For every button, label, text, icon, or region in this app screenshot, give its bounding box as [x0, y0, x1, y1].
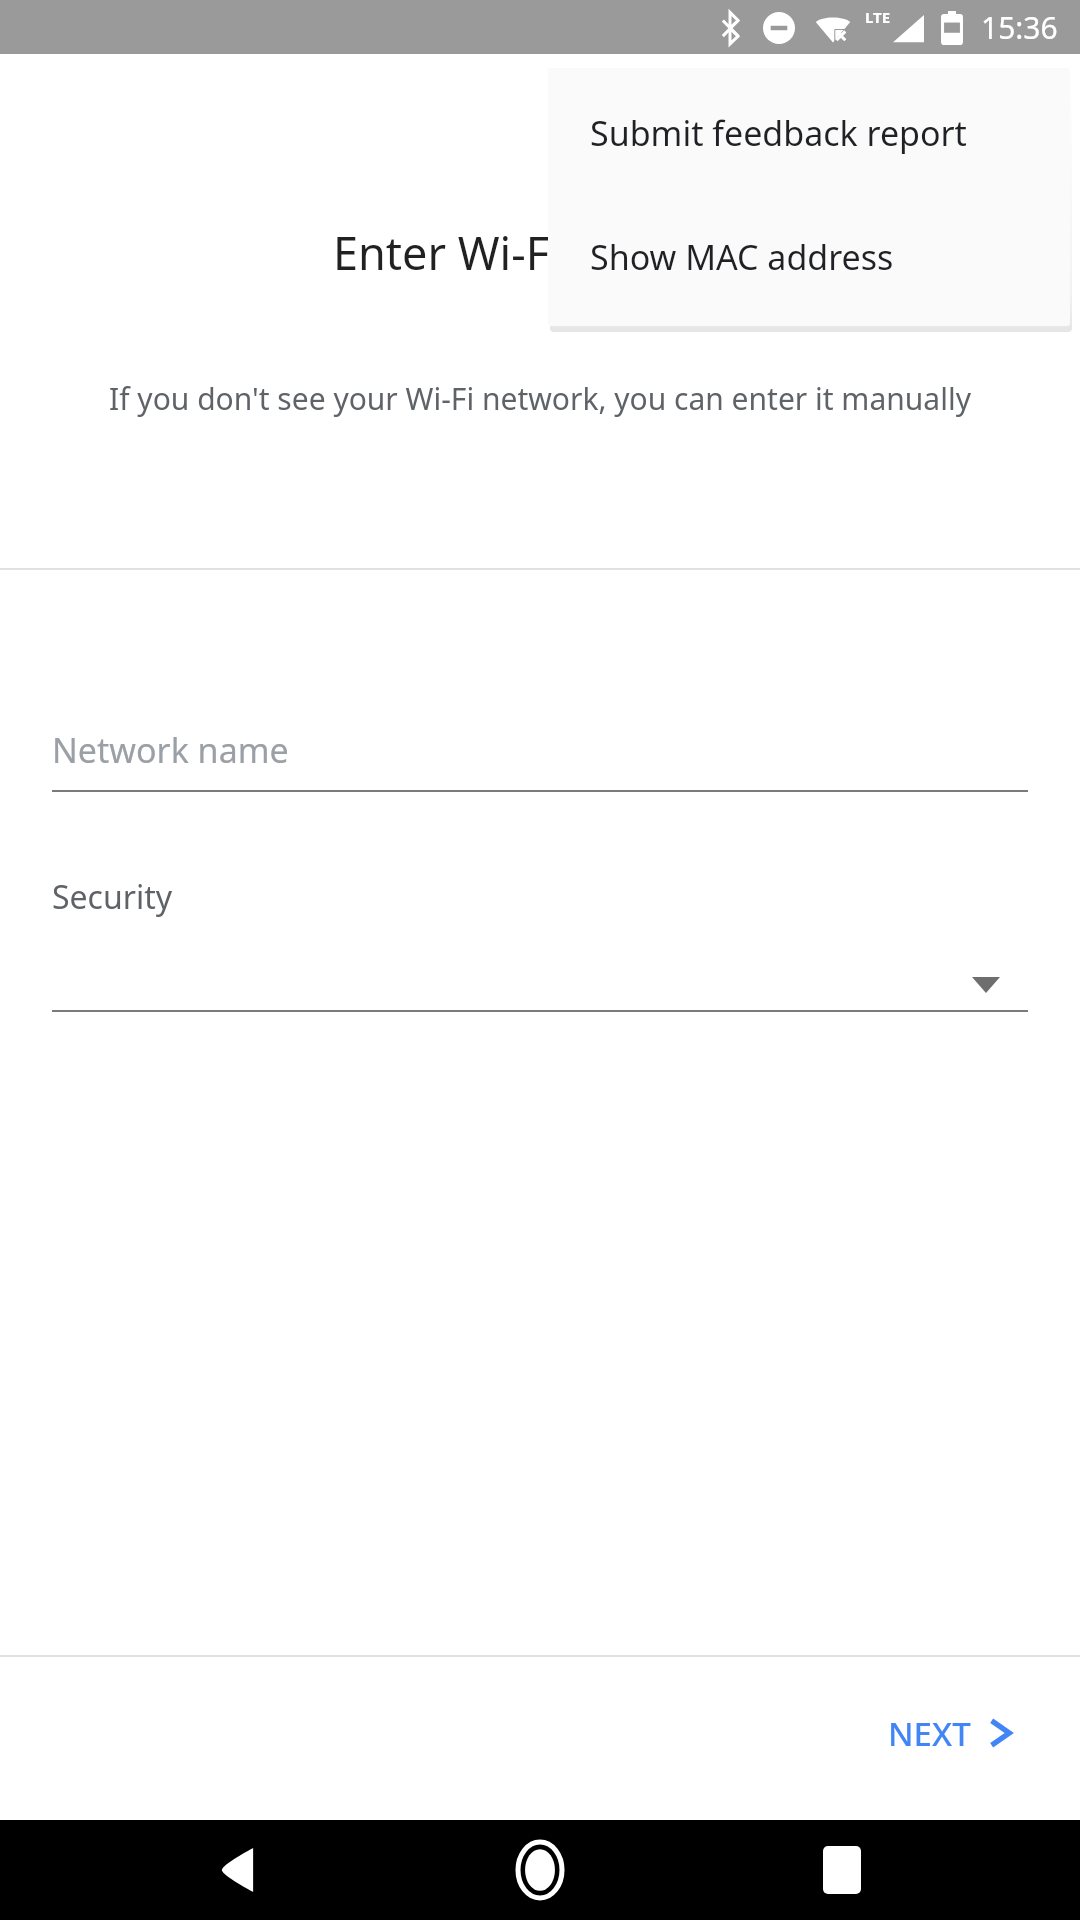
staticText: Show MAC address — [590, 234, 894, 280]
staticText: 15:36 — [981, 7, 1058, 48]
staticText: Submit feedback report — [590, 110, 967, 156]
staticText: NEXT — [888, 1711, 971, 1756]
staticText: LTE — [865, 7, 891, 27]
staticText: If you don't see your Wi-Fi network, you… — [62, 378, 1018, 419]
button[interactable]: Show MAC address — [548, 196, 1070, 322]
button[interactable]: Network name — [52, 708, 1028, 792]
button[interactable]: NEXT — [888, 1690, 1013, 1776]
button[interactable]: Home — [492, 1822, 588, 1918]
staticText: Network name — [52, 727, 289, 773]
staticText: Security — [52, 875, 173, 919]
button[interactable]: Recent apps — [794, 1822, 890, 1918]
button[interactable]: Submit feedback report — [548, 68, 1070, 196]
staticText: Enter Wi-Fi network — [0, 222, 1080, 283]
button[interactable]: Security type — [52, 930, 1028, 1012]
button[interactable]: Back — [190, 1822, 286, 1918]
